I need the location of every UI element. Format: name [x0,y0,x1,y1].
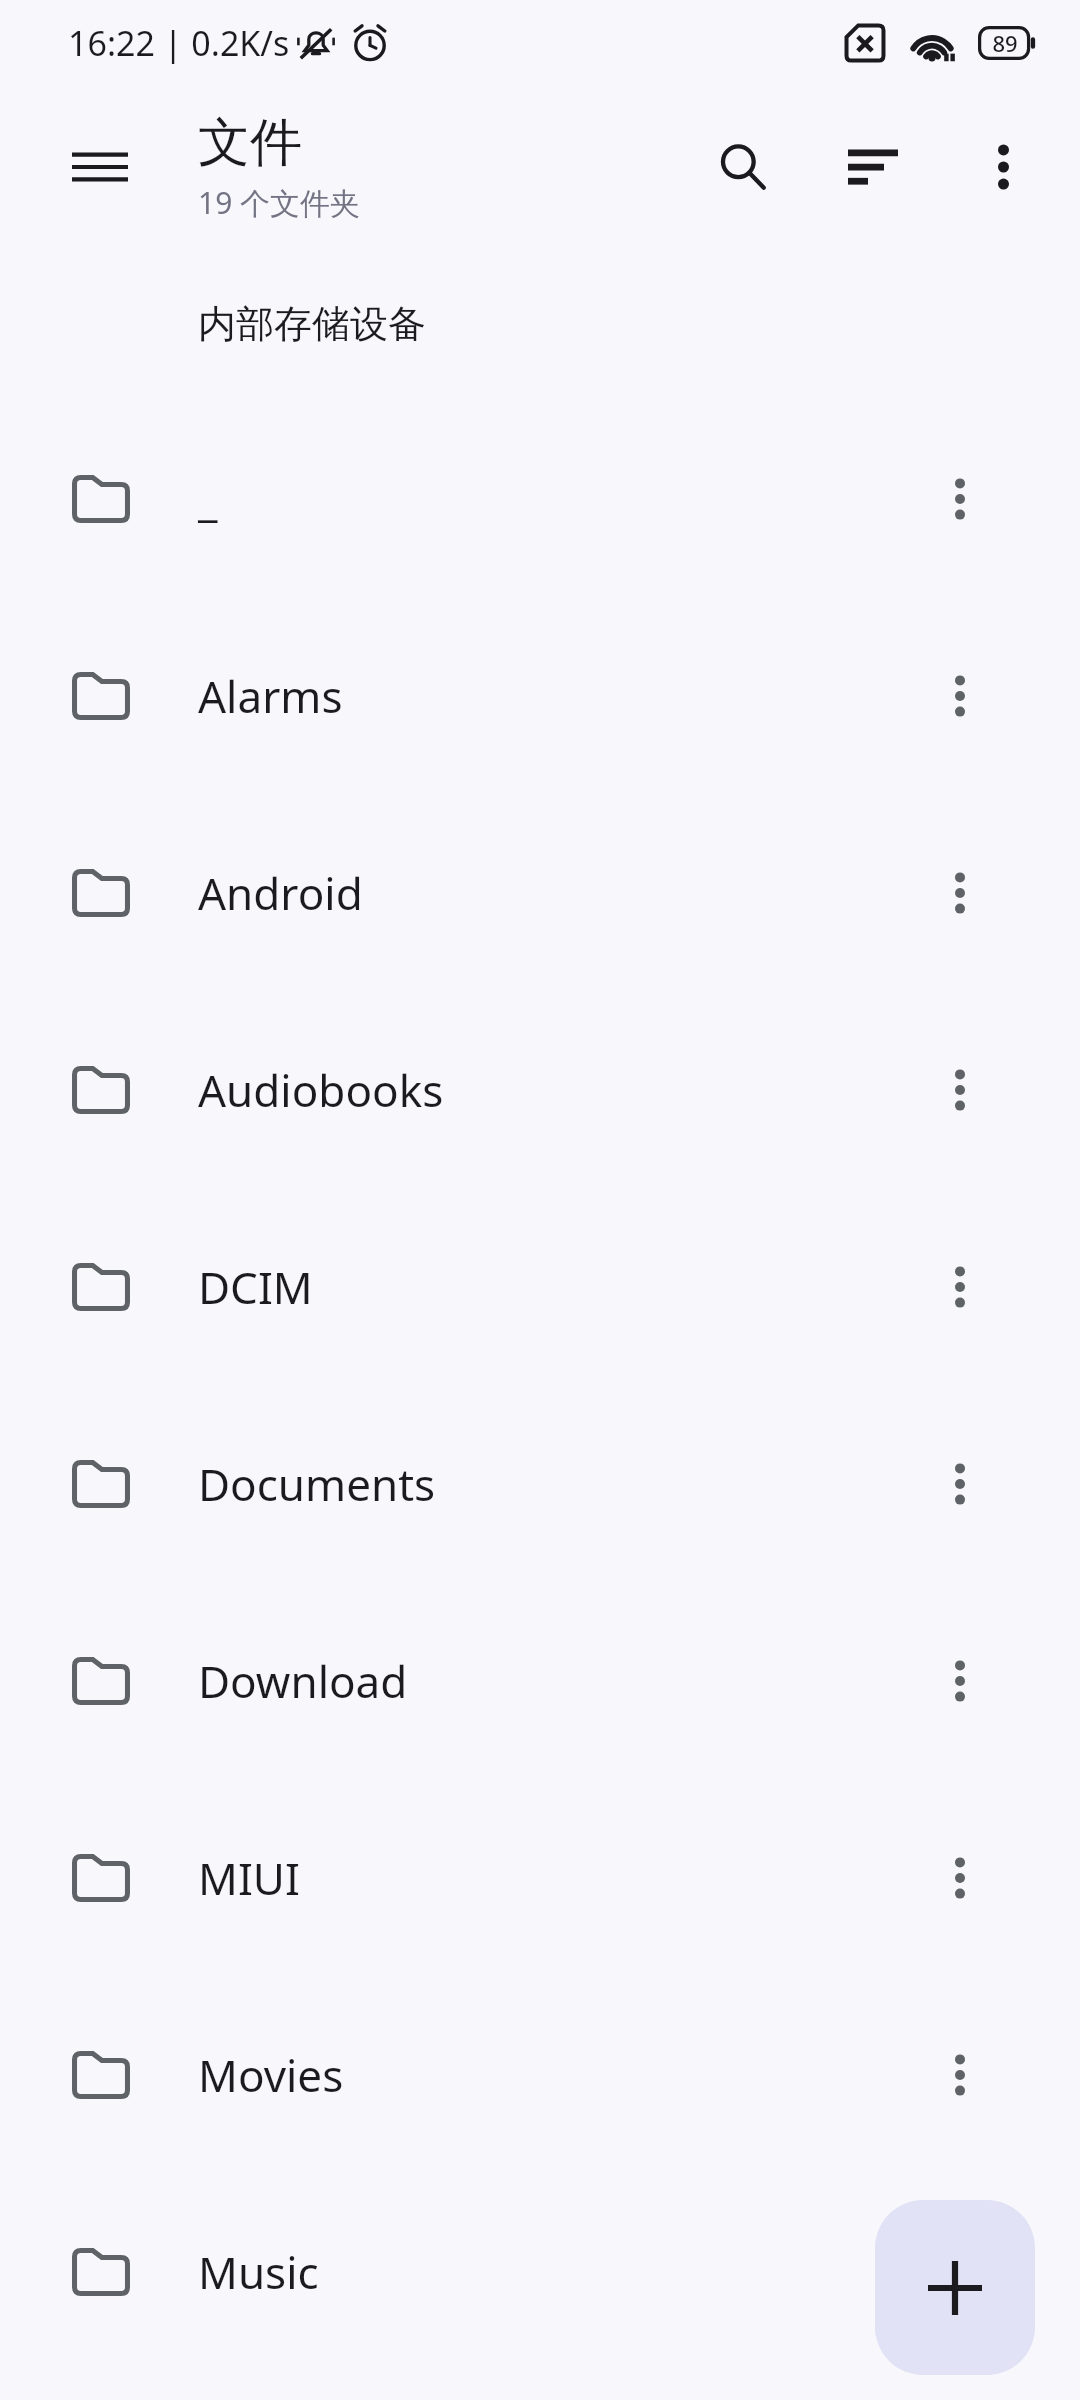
staticText: MIUI [198,1848,300,1908]
button[interactable]: Audiobooks [0,991,1080,1188]
button[interactable]: More options for _ [912,451,1008,547]
button[interactable]: More options for Alarms [912,648,1008,744]
button[interactable]: Music [0,2173,1080,2370]
button[interactable]: More options for MIUI [912,1830,1008,1926]
staticText: _ [198,469,218,529]
staticText: Music [198,2242,319,2302]
button[interactable]: MIUI [0,1779,1080,1976]
button[interactable]: Movies [0,1976,1080,2173]
button[interactable]: Sort [808,102,938,232]
staticText: Movies [198,2045,344,2105]
button[interactable]: More options for Documents [912,1436,1008,1532]
staticText: 19 个文件夹 [198,182,361,223]
staticText: DCIM [198,1257,313,1317]
button[interactable]: Search [678,102,808,232]
button[interactable]: Alarms [0,597,1080,794]
button[interactable]: Create new [875,2200,1035,2375]
staticText: Download [198,1651,408,1711]
staticText: Android [198,863,363,923]
staticText: Documents [198,1454,436,1514]
staticText: 89 [992,28,1018,58]
staticText: 16:22 | 0.2K/s [68,20,290,66]
button[interactable]: _ [0,400,1080,597]
button[interactable]: Documents [0,1385,1080,1582]
button[interactable]: More options for Movies [912,2027,1008,2123]
button[interactable]: More options [938,102,1068,232]
button[interactable]: Download [0,1582,1080,1779]
staticText: Alarms [198,666,343,726]
button[interactable]: Open navigation drawer [32,99,168,235]
button[interactable]: More options for Android [912,845,1008,941]
button[interactable]: More options for Audiobooks [912,1042,1008,1138]
button[interactable]: More options for DCIM [912,1239,1008,1335]
button[interactable]: Android [0,794,1080,991]
staticText: 内部存储设备 [198,300,426,348]
button[interactable]: DCIM [0,1188,1080,1385]
button[interactable]: More options for Download [912,1633,1008,1729]
staticText: 文件 [198,110,302,176]
staticText: Audiobooks [198,1060,444,1120]
